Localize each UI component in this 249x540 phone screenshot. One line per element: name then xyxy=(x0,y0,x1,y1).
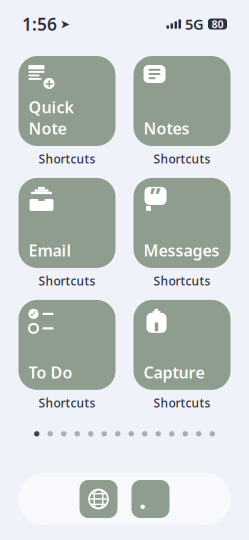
staticText: To Do xyxy=(28,362,72,383)
button[interactable]: + xyxy=(18,56,115,146)
staticText: Shortcuts xyxy=(153,151,210,167)
button[interactable]: ✓ xyxy=(18,300,115,390)
staticText: Messages xyxy=(143,240,219,261)
button[interactable]: Feeds xyxy=(131,480,169,518)
staticText: ” xyxy=(150,180,161,212)
staticText: Shortcuts xyxy=(153,395,210,411)
button[interactable]: Browser xyxy=(79,480,117,518)
staticText: Shortcuts xyxy=(38,273,95,289)
staticText: Shortcuts xyxy=(38,151,95,167)
button[interactable]: Email xyxy=(18,178,115,268)
staticText: + xyxy=(45,74,53,93)
staticText: ✓ xyxy=(29,309,37,319)
staticText: Quick Note xyxy=(28,96,73,139)
staticText: Notes xyxy=(143,118,189,139)
staticText: Email xyxy=(28,240,71,261)
staticText: ➤ xyxy=(60,17,70,31)
staticText: 80 xyxy=(211,17,223,31)
button[interactable]: ” xyxy=(133,178,230,268)
staticText: 1:56 xyxy=(22,12,57,35)
staticText: Capture xyxy=(143,362,204,383)
staticText: Shortcuts xyxy=(38,395,95,411)
staticText: Shortcuts xyxy=(153,273,210,289)
button[interactable]: Capture xyxy=(133,300,230,390)
button[interactable]: Notes xyxy=(133,56,230,146)
staticText: 5G xyxy=(185,14,204,34)
